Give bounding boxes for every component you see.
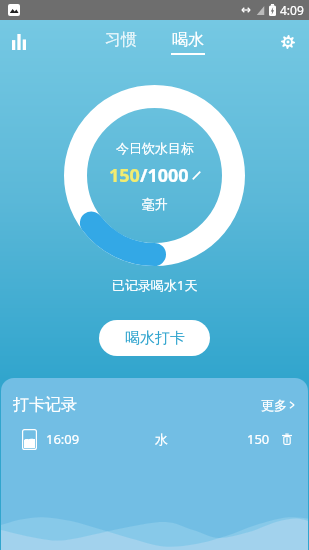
button[interactable]: Delete [278,430,296,448]
staticText: 习惯 [105,30,137,50]
staticText: 150 [109,163,140,188]
button[interactable]: 喝水 [168,22,208,58]
staticText: 喝水打卡 [125,329,185,348]
staticText: 已记录喝水1天 [112,276,198,294]
staticText: 4:09 [280,2,304,18]
button[interactable]: 更多 [259,393,297,417]
staticText: 更多 [261,397,287,413]
button[interactable]: 喝水打卡 [99,320,210,356]
staticText: 喝水 [172,30,204,50]
staticText: 水 [155,431,168,447]
staticText: 今日饮水目标 [116,140,194,156]
staticText: /1000 [140,163,189,188]
button[interactable]: 习惯 [101,22,141,58]
staticText: 打卡记录 [13,395,77,415]
button[interactable]: Settings [273,27,303,57]
staticText: 16:09 [46,430,80,448]
staticText: 150 [247,430,270,448]
button[interactable]: 16:09 [1,424,308,454]
staticText: 毫升 [142,196,168,212]
button[interactable]: Statistics [4,27,34,57]
